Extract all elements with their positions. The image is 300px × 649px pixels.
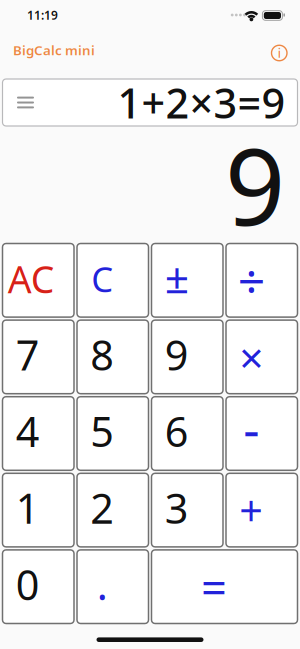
button[interactable]: 6 [151,397,223,470]
staticText: 7 [16,327,40,382]
staticText: AC [8,254,55,304]
staticText: 0 [16,557,40,612]
staticText: 9 [225,115,285,255]
button[interactable]: 8 [77,320,148,394]
button[interactable]: C [77,243,148,317]
button[interactable]: 2 [77,473,148,547]
staticText: 3 [165,480,189,535]
staticText: 2 [90,480,114,535]
staticText: BigCalc mini [13,41,95,59]
button[interactable]: 3 [151,473,223,547]
button[interactable]: + [226,473,297,547]
staticText: ÷ [238,248,265,312]
button[interactable]: 1 [2,473,74,547]
staticText: ± [165,248,189,305]
staticText: . [97,557,108,612]
staticText: 11:19 [27,7,58,23]
staticText: 5 [90,404,114,458]
staticText: 9 [165,327,189,382]
button[interactable]: . [77,550,148,623]
staticText: 1+2×3=9 [117,75,285,130]
button[interactable]: - [226,397,297,470]
staticText: × [239,329,263,385]
staticText: i [278,45,281,61]
button[interactable]: AC [2,243,74,317]
button[interactable]: 4 [2,397,74,470]
staticText: + [239,483,263,538]
staticText: C [91,256,113,302]
button[interactable]: = [151,550,297,623]
staticText: = [201,557,227,617]
button[interactable]: × [226,320,297,394]
button[interactable]: ± [151,243,223,317]
staticText: 8 [90,327,114,382]
staticText: 6 [165,404,189,458]
button[interactable]: ÷ [226,243,297,317]
staticText: - [243,395,259,462]
button[interactable]: Info [271,42,300,58]
button[interactable]: 7 [2,320,74,394]
button[interactable]: 0 [2,550,74,623]
staticText: 1 [16,480,40,535]
button[interactable]: Menu [2,97,34,108]
staticText: 4 [16,404,40,458]
button[interactable]: 9 [151,320,223,394]
button[interactable]: 5 [77,397,148,470]
